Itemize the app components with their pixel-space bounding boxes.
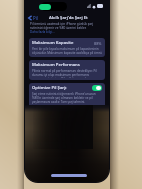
staticText: Pil bbox=[33, 15, 38, 21]
button[interactable]: Optimize Pil Şarjı bbox=[29, 83, 105, 108]
staticText: Optimize Pil Şarjı bbox=[32, 85, 67, 91]
button[interactable]: Geri Pil bbox=[28, 14, 38, 21]
staticText: Maksimum Performans bbox=[32, 62, 80, 68]
staticText: Akıllı Şarj'da Şarj Et bbox=[49, 15, 88, 21]
button[interactable]: Maksimum Performans bbox=[29, 60, 105, 80]
staticText: Pil ömrünü uzatmak için iPhone günlük şa… bbox=[30, 22, 105, 30]
staticText: Piliniz normal pil performansını destekl… bbox=[32, 69, 102, 78]
button[interactable]: Optimize Pil Şarjı bbox=[92, 85, 102, 91]
staticText: Yeni bir pile kıyasla maksimum pil kapas… bbox=[32, 47, 102, 55]
staticText: Şarj etme rutininizi öğrenerek iPhone'un… bbox=[32, 92, 102, 104]
staticText: Maksimum Kapasite bbox=[32, 40, 74, 46]
staticText: 88% bbox=[94, 41, 102, 46]
button[interactable]: Maksimum Kapasite bbox=[29, 38, 105, 57]
staticText: Daha fazla bilgi... bbox=[30, 30, 55, 34]
